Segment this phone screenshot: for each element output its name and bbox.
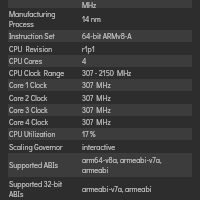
staticText: Supported ABIs [9, 160, 76, 170]
button[interactable]: Core 2 Clock [8, 92, 192, 104]
staticText: Scaling Governor [9, 142, 76, 152]
staticText: Core 4 Clock [9, 117, 76, 127]
staticText: interactive [82, 142, 185, 152]
staticText: 307 MHz [82, 93, 185, 103]
button[interactable]: Core 4 Clock [8, 116, 192, 128]
staticText: CPU Clock Range [9, 68, 76, 78]
staticText: 307 - 2150 MHz [82, 68, 185, 78]
staticText: Core 3 Clock [9, 105, 76, 115]
button[interactable]: CPU Cores [8, 55, 192, 67]
staticText: 17 % [82, 129, 185, 139]
button[interactable]: Supported ABIs [8, 153, 192, 177]
button[interactable]: Core 3 Clock [8, 104, 192, 116]
staticText: MHz [82, 0, 97, 8]
staticText: 14 nm [82, 14, 185, 24]
staticText: Manufacturing Process [9, 9, 76, 29]
staticText: CPU Utilization [9, 129, 76, 139]
staticText: CPU Revision [9, 44, 76, 54]
button[interactable]: Manufacturing Process [8, 8, 192, 30]
staticText: armeabi-v7a, armeabi [82, 184, 185, 194]
staticText: r1p1 [82, 44, 185, 54]
button[interactable]: CPU Utilization [8, 128, 192, 140]
staticText: arm64-v8a, armeabi-v7a, armeabi [82, 155, 185, 175]
button[interactable]: Scaling Governor [8, 141, 192, 153]
button[interactable]: CPU Clock Range [8, 67, 192, 79]
button[interactable]: CPU Revision [8, 43, 192, 55]
button[interactable]: Instruction Set [8, 30, 192, 42]
button[interactable]: Supported 32-bit ABIs [8, 177, 192, 200]
staticText: 4 [82, 56, 185, 66]
staticText: Instruction Set [9, 31, 76, 41]
staticText: Supported 32-bit ABIs [9, 179, 76, 199]
staticText: Core 1 Clock [9, 80, 76, 90]
staticText: 307 MHz [82, 105, 185, 115]
button[interactable]: MHz [8, 0, 192, 8]
staticText: Core 2 Clock [9, 93, 76, 103]
staticText: 307 MHz [82, 80, 185, 90]
staticText: 64-bit ARMv8-A [82, 31, 185, 41]
staticText: CPU Cores [9, 56, 76, 66]
button[interactable]: Core 1 Clock [8, 79, 192, 91]
staticText: 307 MHz [82, 117, 185, 127]
